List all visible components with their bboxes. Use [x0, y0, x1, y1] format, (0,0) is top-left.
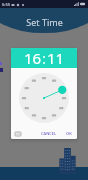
button[interactable]: Switch to text input	[14, 130, 22, 138]
button[interactable]: CANCEL	[39, 130, 59, 137]
button[interactable]: OK	[64, 130, 74, 137]
staticText: OK	[66, 131, 72, 136]
button[interactable]: 11	[47, 48, 65, 68]
button[interactable]: 16	[11, 48, 77, 68]
button[interactable]: 16	[24, 48, 42, 68]
staticText: CANCEL	[41, 131, 57, 136]
other: Building	[59, 148, 76, 174]
staticText: :	[42, 48, 47, 68]
staticText: 6:55	[2, 2, 10, 7]
staticText: Set Time	[26, 16, 63, 28]
button[interactable]: Clock dial	[19, 73, 69, 123]
